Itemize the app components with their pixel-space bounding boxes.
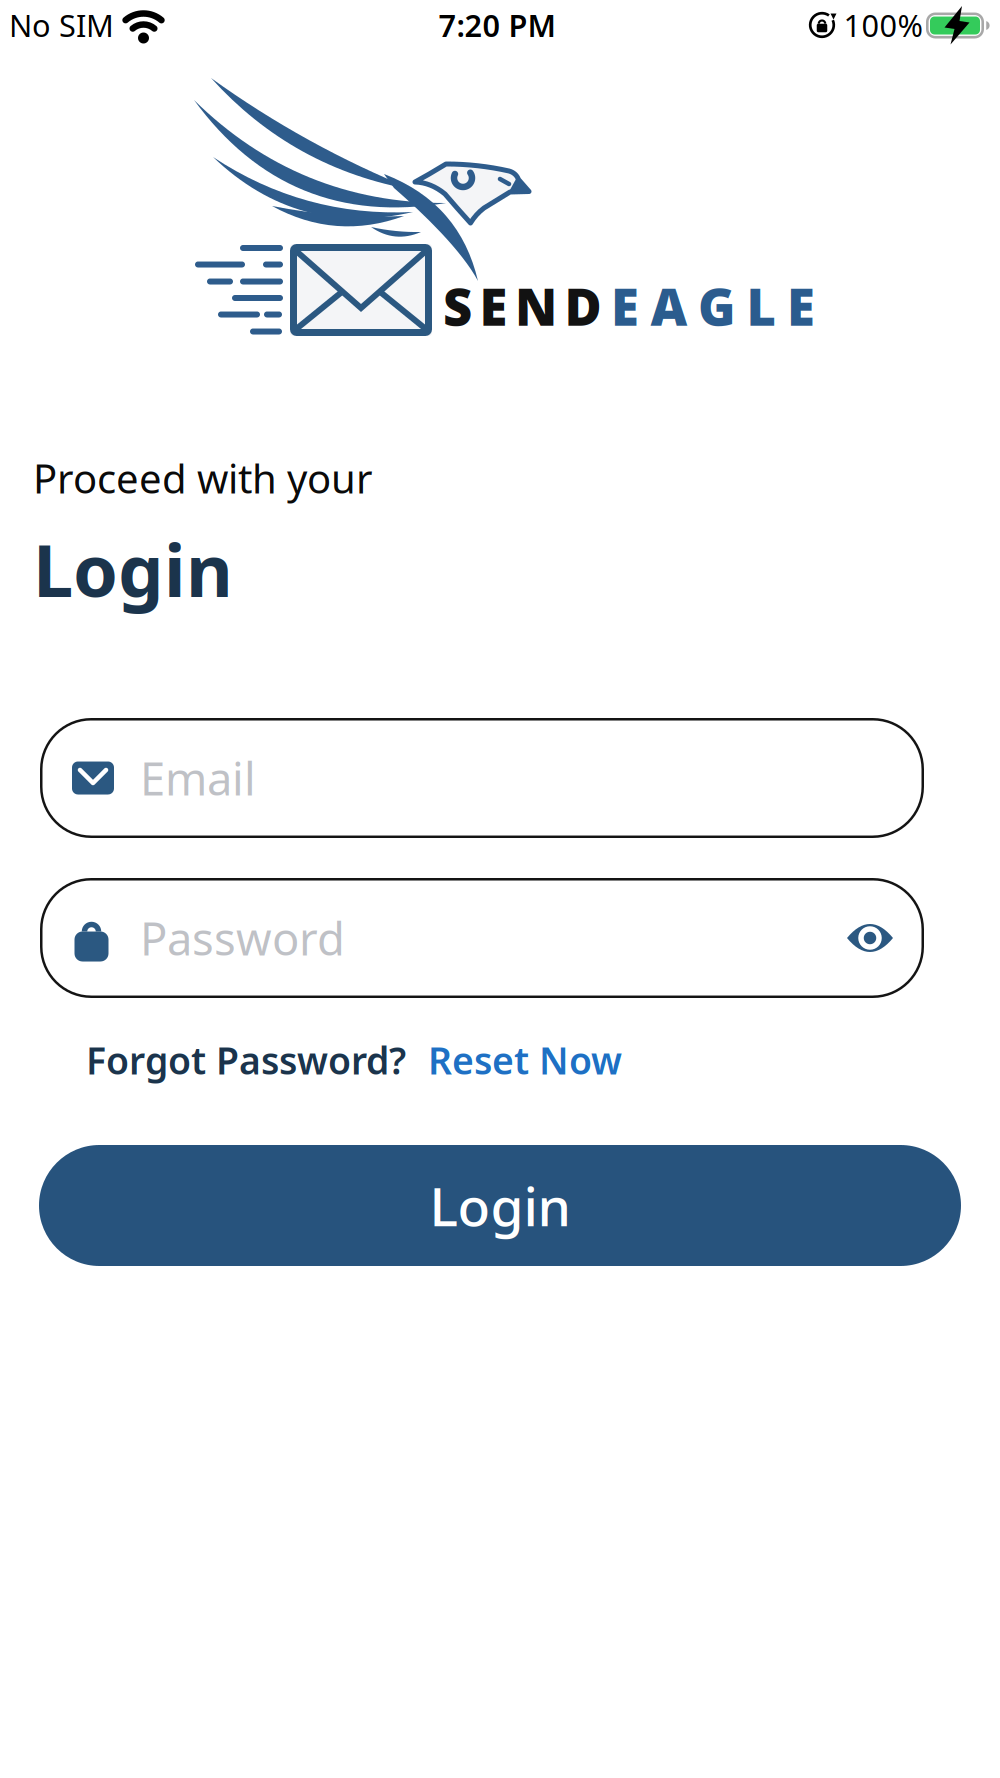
staticText: Login (429, 1170, 570, 1241)
staticText: SEND (443, 272, 601, 340)
staticText: EAGLE (611, 272, 815, 340)
button[interactable]: Password (40, 878, 924, 998)
staticText: Login (33, 521, 233, 617)
staticText: Email (140, 748, 256, 808)
staticText: 7:20 PM (438, 5, 555, 45)
staticText: Password (140, 908, 345, 968)
staticText: Proceed with your (33, 451, 373, 504)
staticText: No SIM (9, 5, 114, 45)
button[interactable] (840, 908, 900, 968)
button[interactable]: Login (39, 1145, 961, 1266)
staticText: Forgot Password? (86, 1035, 406, 1085)
staticText: Reset Now (428, 1035, 622, 1085)
button[interactable]: Email (40, 718, 924, 838)
staticText: 100% (843, 5, 922, 45)
button[interactable]: Reset Now (428, 1035, 622, 1085)
